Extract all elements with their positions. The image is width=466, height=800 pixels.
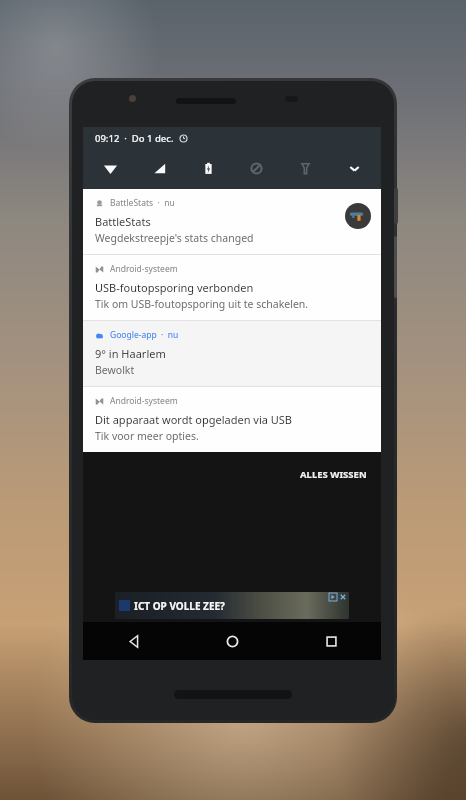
button[interactable]: Flashlight	[294, 157, 316, 179]
button[interactable]: BattleStats · nu	[83, 189, 381, 254]
staticText: BattleStats	[95, 214, 151, 229]
staticText: Google-app · nu	[110, 329, 179, 341]
button[interactable]: Recents	[301, 622, 361, 660]
staticText: ALLES WISSEN	[300, 468, 367, 481]
staticText: 09:12 · Do 1 dec.	[95, 132, 174, 145]
button[interactable]: Wi-Fi	[99, 157, 121, 179]
staticText: Tik om USB-foutopsporing uit te schakele…	[95, 297, 309, 311]
button[interactable]: Battery	[197, 157, 219, 179]
staticText: Android-systeem	[110, 395, 178, 407]
staticText: Wegdekstreepje's stats changed	[95, 231, 254, 245]
staticText: BattleStats · nu	[110, 197, 175, 209]
button[interactable]: ALLES WISSEN	[286, 460, 381, 489]
staticText: ICT OP VOLLE ZEE?	[134, 599, 225, 613]
button[interactable]: Close ad	[339, 593, 347, 601]
button[interactable]: Do not disturb	[245, 157, 267, 179]
staticText: USB-foutopsporing verbonden	[95, 280, 254, 295]
staticText: Tik voor meer opties.	[95, 429, 199, 443]
button[interactable]: ICT OP VOLLE ZEE?	[115, 592, 349, 619]
staticText: 9° in Haarlem	[95, 346, 166, 361]
staticText: Dit apparaat wordt opgeladen via USB	[95, 412, 292, 427]
staticText: Android-systeem	[110, 263, 178, 275]
button[interactable]: Home	[202, 622, 262, 660]
button[interactable]: Google-app · nu	[83, 321, 381, 386]
staticText: Bewolkt	[95, 363, 135, 377]
button[interactable]: Mobile signal	[148, 157, 170, 179]
button[interactable]: Expand	[343, 157, 365, 179]
button[interactable]: Android-systeem	[83, 387, 381, 452]
button[interactable]: Back	[103, 622, 163, 660]
button[interactable]: Android-systeem	[83, 255, 381, 320]
